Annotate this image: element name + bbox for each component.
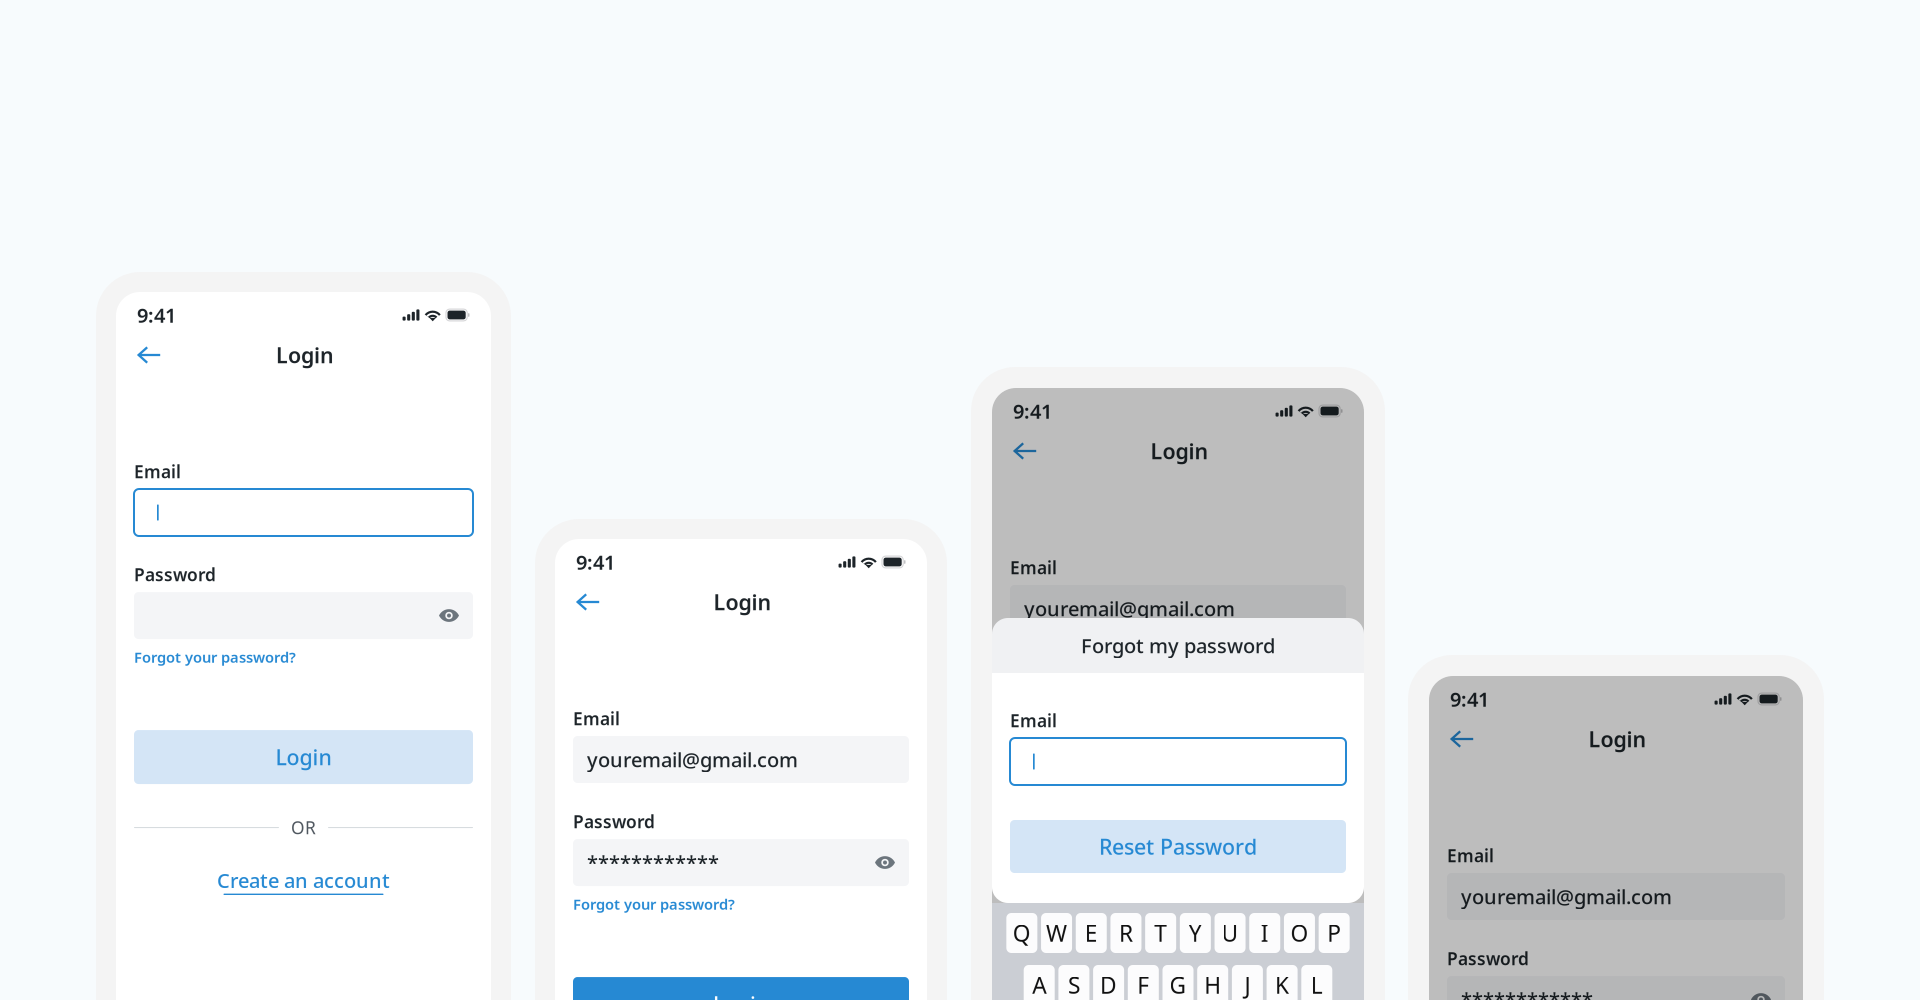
button[interactable]: Reset Password [1010,820,1346,873]
button[interactable]: Q [1006,913,1037,953]
button[interactable]: I [1249,913,1280,953]
button[interactable]: Forgot your password? [134,648,473,666]
button[interactable]: U [1214,913,1245,953]
staticText: youremail@gmail.com [1024,595,1235,622]
staticText: Y [1189,918,1202,948]
staticText: OR [291,816,316,839]
staticText: Login [713,588,771,616]
staticText: Forgot my password [1081,632,1275,659]
staticText: K [1275,970,1289,1000]
staticText: Email [134,460,181,483]
staticText: Login [275,743,331,771]
staticText: Login [1150,437,1208,465]
button[interactable]: Login [1010,826,1346,880]
staticText: H [1204,970,1221,1000]
staticText: W [1046,918,1067,948]
staticText: A [1032,970,1046,1000]
staticText: D [1100,970,1117,1000]
button[interactable]: P [1319,913,1350,953]
staticText: Password [1447,947,1529,970]
staticText: I [1261,918,1269,948]
staticText: Password [134,563,216,586]
button[interactable]: Login [134,730,473,784]
button[interactable]: K [1267,965,1298,1000]
button[interactable]: Forgot your password? [1010,744,1346,762]
staticText: O [1290,918,1308,948]
staticText: G [1169,970,1186,1000]
staticText: Email [1010,709,1057,732]
button[interactable]: L [1301,965,1332,1000]
button[interactable]: T [1145,913,1176,953]
button[interactable]: J [1232,965,1263,1000]
staticText: Forgot your password? [134,647,296,667]
staticText: ************ [587,849,719,876]
button[interactable]: W [1041,913,1072,953]
staticText: 9:41 [576,549,615,575]
staticText: S [1068,970,1080,1000]
staticText: U [1221,918,1238,948]
button[interactable]: F [1128,965,1159,1000]
staticText: J [1244,970,1250,1000]
button[interactable]: Y [1180,913,1211,953]
staticText: Password [1010,659,1092,682]
button[interactable]: R [1110,913,1141,953]
button[interactable]: Create an account [134,867,473,895]
staticText: L [1311,970,1323,1000]
button[interactable]: Back [1013,436,1049,466]
staticText: Login [1588,725,1646,753]
staticText: youremail@gmail.com [587,746,798,773]
staticText: Create an account [217,867,390,894]
button[interactable]: E [1076,913,1107,953]
staticText: Login [713,990,769,1000]
staticText: P [1327,918,1341,948]
staticText: 9:41 [1450,686,1489,712]
staticText: youremail@gmail.com [1461,883,1672,910]
staticText: Forgot your password? [573,894,735,914]
button[interactable]: Back [137,340,173,370]
staticText: 9:41 [1013,398,1052,424]
staticText: Password [573,810,655,833]
button[interactable]: S [1058,965,1089,1000]
staticText: ************ [1461,986,1593,1000]
button[interactable]: Login [573,977,909,1000]
staticText: R [1119,918,1133,948]
button[interactable]: Back [1450,724,1486,754]
staticText: T [1154,918,1167,948]
staticText: Email [1447,844,1494,867]
button[interactable]: Back [576,587,612,617]
staticText: Email [1010,556,1057,579]
staticText: Forgot your password? [1010,743,1172,763]
button[interactable]: H [1197,965,1228,1000]
staticText: Login [276,341,334,369]
staticText: ************ [1024,698,1156,725]
staticText: 9:41 [137,302,176,328]
button[interactable]: Forgot your password? [573,895,909,913]
staticText: Email [573,707,620,730]
button[interactable]: D [1093,965,1124,1000]
staticText: F [1137,970,1149,1000]
staticText: Reset Password [1099,832,1257,861]
button[interactable]: A [1024,965,1055,1000]
staticText: E [1085,918,1098,948]
staticText: Q [1013,918,1031,948]
button[interactable]: G [1162,965,1193,1000]
staticText: Login [1150,839,1206,867]
button[interactable]: O [1284,913,1315,953]
